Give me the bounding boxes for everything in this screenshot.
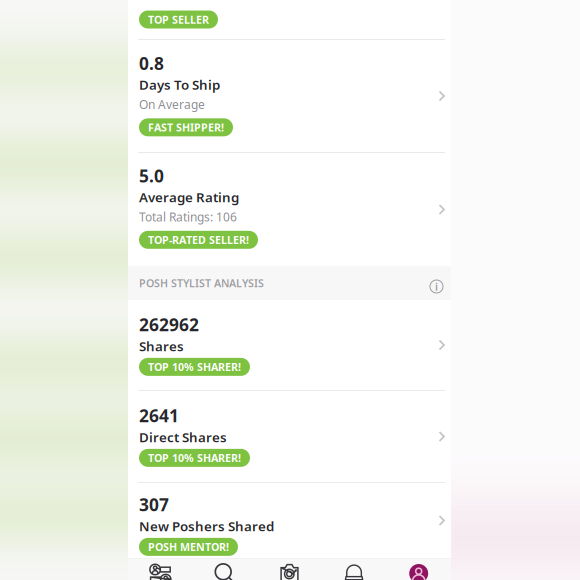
button[interactable]: Feed — [128, 558, 193, 580]
staticText: Average Rating — [139, 188, 239, 206]
button[interactable]: About Posh Stylist Analysis — [428, 271, 445, 295]
button[interactable]: Sell — [257, 558, 322, 580]
button[interactable]: 307 — [128, 483, 451, 558]
staticText: TOP 10% SHARER! — [148, 360, 241, 374]
staticText: Total Ratings: 106 — [139, 209, 237, 225]
button[interactable]: 2641 — [128, 391, 451, 482]
button[interactable]: 5.0 — [128, 153, 451, 266]
button[interactable]: Search — [193, 558, 257, 580]
button[interactable]: My Closet — [386, 558, 451, 580]
staticText: Days To Ship — [139, 76, 220, 93]
staticText: TOP SELLER — [148, 12, 209, 27]
button[interactable]: 262962 — [128, 300, 451, 390]
staticText: FAST SHIPPER! — [148, 120, 224, 134]
staticText: 5.0 — [139, 164, 164, 187]
staticText: 0.8 — [139, 52, 164, 75]
button[interactable]: 0.8 — [128, 40, 451, 152]
staticText: i — [435, 279, 438, 294]
staticText: Shares — [139, 337, 184, 355]
staticText: Direct Shares — [139, 428, 227, 446]
staticText: On Average — [139, 96, 205, 112]
staticText: POSH MENTOR! — [148, 540, 229, 554]
staticText: New Poshers Shared — [139, 517, 274, 535]
button[interactable]: Notifications — [322, 558, 386, 580]
staticText: POSH STYLIST ANALYSIS — [139, 276, 264, 290]
staticText: 262962 — [139, 313, 199, 336]
staticText: TOP 10% SHARER! — [148, 451, 241, 465]
staticText: 2641 — [139, 404, 179, 427]
staticText: TOP-RATED SELLER! — [148, 233, 249, 247]
staticText: 307 — [139, 493, 169, 516]
